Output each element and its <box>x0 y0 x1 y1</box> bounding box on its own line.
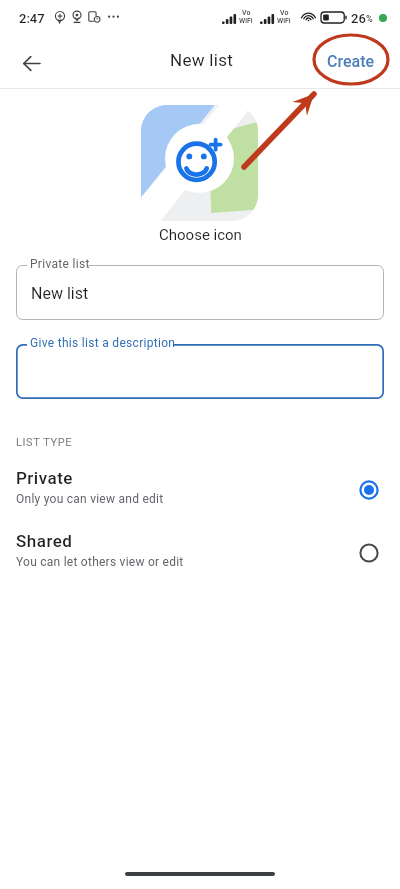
staticText: Give this list a description <box>30 336 176 350</box>
button[interactable]: Create <box>317 44 385 79</box>
staticText: New list <box>31 284 89 303</box>
staticText: WiFi <box>277 17 291 25</box>
staticText: Private list <box>30 257 90 271</box>
button[interactable]: Private <box>0 468 400 516</box>
button[interactable]: Back <box>9 41 54 86</box>
button[interactable]: Shared <box>0 531 400 579</box>
button[interactable]: Choose icon <box>141 105 258 221</box>
staticText: Private <box>16 468 73 488</box>
staticText: LIST TYPE <box>16 436 73 449</box>
staticText: Create <box>327 52 375 71</box>
staticText: Vo <box>280 9 289 17</box>
staticText: 2:47 <box>19 11 45 26</box>
staticText: Choose icon <box>159 226 242 244</box>
staticText: Shared <box>16 531 73 551</box>
staticText: Vo <box>242 9 251 17</box>
staticText: % <box>366 14 373 25</box>
button[interactable]: Private list <box>16 265 384 320</box>
staticText: WiFi <box>239 17 253 25</box>
button[interactable]: Give this list a description <box>16 344 384 399</box>
staticText: New list <box>170 50 234 70</box>
staticText: 26 <box>351 11 366 26</box>
staticText: You can let others view or edit <box>16 555 184 569</box>
staticText: Only you can view and edit <box>16 492 164 506</box>
